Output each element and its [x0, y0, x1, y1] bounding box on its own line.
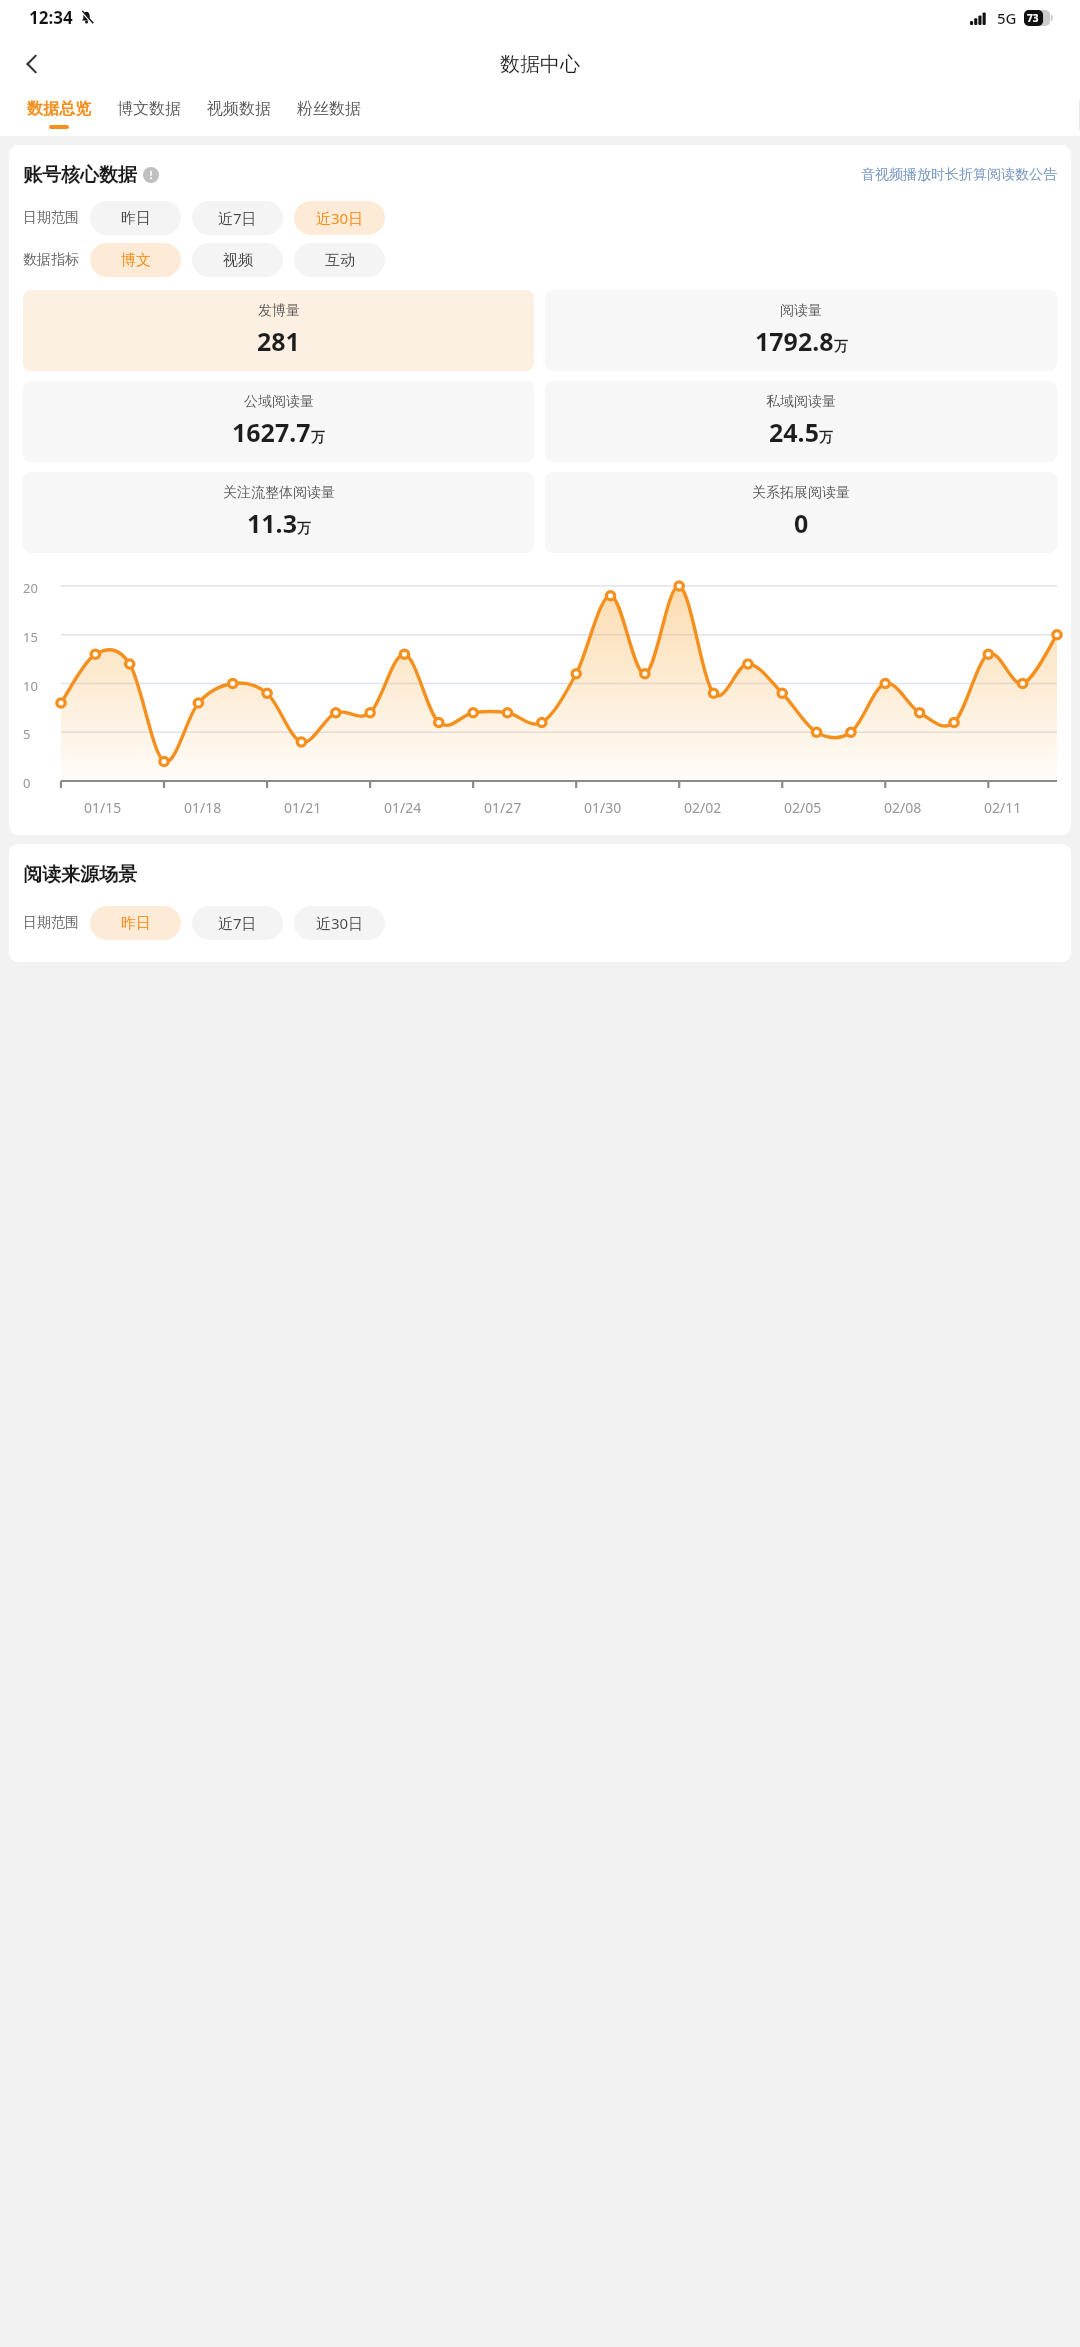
staticText: 数据总览	[27, 99, 91, 119]
staticText: 20	[23, 579, 38, 593]
staticText: 互动	[325, 251, 355, 270]
button[interactable]: 博文数据	[104, 93, 194, 136]
staticText: 281	[257, 324, 300, 358]
staticText: 02/05	[784, 798, 822, 817]
button[interactable]: 近30日	[294, 201, 385, 235]
button[interactable]: 昨日	[90, 201, 181, 235]
staticText: 10	[23, 677, 38, 691]
staticText: 24.5	[769, 415, 819, 449]
staticText: 博文数据	[117, 99, 181, 119]
staticText: 账号核心数据	[23, 163, 137, 187]
staticText: 73	[1027, 11, 1039, 25]
staticText: 万	[834, 338, 848, 356]
button[interactable]: Info	[143, 167, 159, 183]
staticText: 01/18	[184, 798, 222, 817]
button[interactable]: 互动	[294, 243, 385, 277]
staticText: 0	[23, 774, 31, 788]
button[interactable]: 视频	[192, 243, 283, 277]
staticText: 近30日	[316, 913, 364, 933]
button[interactable]: 近7日	[192, 906, 283, 940]
staticText: 关注流整体阅读量	[223, 484, 335, 502]
staticText: 日期范围	[23, 209, 79, 227]
button[interactable]: 粉丝数据	[284, 93, 374, 136]
staticText: 数据中心	[500, 52, 580, 77]
staticText: 12:34	[29, 6, 73, 29]
staticText: 01/24	[384, 798, 422, 817]
button[interactable]: 公域阅读量	[23, 381, 534, 462]
staticText: 5	[23, 725, 31, 739]
staticText: 视频数据	[207, 99, 271, 119]
staticText: 万	[311, 429, 325, 447]
button[interactable]: 阅读量	[545, 290, 1057, 371]
button[interactable]: 近30日	[294, 906, 385, 940]
staticText: 发博量	[258, 302, 300, 320]
button[interactable]: 数据总览	[14, 93, 104, 136]
staticText: 11.3	[247, 506, 297, 540]
staticText: 私域阅读量	[766, 393, 836, 411]
staticText: 阅读量	[780, 302, 822, 320]
button[interactable]: 关系拓展阅读量	[545, 472, 1057, 553]
staticText: 02/02	[684, 798, 722, 817]
button[interactable]: Back	[8, 40, 56, 88]
button[interactable]: 音视频播放时长折算阅读数公告	[861, 166, 1057, 184]
staticText: 01/30	[584, 798, 622, 817]
staticText: 15	[23, 628, 38, 642]
staticText: 01/15	[84, 798, 122, 817]
staticText: 关系拓展阅读量	[752, 484, 850, 502]
staticText: 万	[297, 520, 311, 538]
staticText: 万	[819, 429, 833, 447]
button[interactable]: 视频数据	[194, 93, 284, 136]
staticText: 阅读来源场景	[23, 863, 137, 887]
staticText: 1792.8	[755, 324, 834, 358]
staticText: 5G	[997, 8, 1017, 28]
staticText: 近7日	[218, 913, 257, 933]
button[interactable]: 发博量	[23, 290, 534, 371]
button[interactable]: 私域阅读量	[545, 381, 1057, 462]
button[interactable]: 博文	[90, 243, 181, 277]
staticText: 01/27	[484, 798, 522, 817]
staticText: 近7日	[218, 208, 257, 228]
staticText: 公域阅读量	[244, 393, 314, 411]
staticText: 昨日	[121, 209, 151, 228]
staticText: 0	[794, 506, 809, 540]
staticText: 博文	[121, 251, 151, 270]
staticText: 01/21	[284, 798, 322, 817]
button[interactable]: 昨日	[90, 906, 181, 940]
staticText: 近30日	[316, 208, 364, 228]
button[interactable]: 关注流整体阅读量	[23, 472, 534, 553]
staticText: 日期范围	[23, 914, 79, 932]
button[interactable]: 近7日	[192, 201, 283, 235]
staticText: 昨日	[121, 914, 151, 933]
staticText: 02/11	[984, 798, 1022, 817]
staticText: 数据指标	[23, 251, 79, 269]
staticText: 02/08	[884, 798, 922, 817]
staticText: 粉丝数据	[297, 99, 361, 119]
staticText: 视频	[223, 251, 253, 270]
staticText: 1627.7	[232, 415, 311, 449]
